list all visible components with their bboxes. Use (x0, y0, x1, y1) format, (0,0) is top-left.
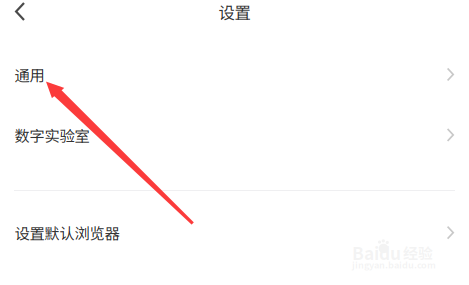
staticText: 设置 (218, 0, 250, 23)
staticText: 设置默认浏览器 (14, 221, 119, 244)
button[interactable]: 通用 (0, 44, 469, 105)
button[interactable]: Back (0, 0, 37, 23)
button[interactable]: 设置默认浏览器 (0, 202, 469, 263)
staticText: 经验 (403, 242, 433, 263)
staticText: 数字实验室 (14, 124, 89, 146)
button[interactable]: 数字实验室 (0, 105, 469, 165)
staticText: jingyan.baidu.com (352, 258, 436, 271)
staticText: 通用 (14, 63, 44, 85)
staticText: Baidu (352, 240, 401, 265)
